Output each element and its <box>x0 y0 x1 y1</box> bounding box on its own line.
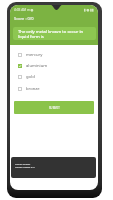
staticText: 4:03 AM ✉ ● <box>14 8 34 12</box>
staticText: ▮ ● ▮▮ <box>84 8 94 12</box>
staticText: Wrong Answer <box>15 163 31 166</box>
button[interactable]: mercury <box>10 49 98 60</box>
button[interactable]: aluminium <box>10 60 98 71</box>
staticText: aluminium <box>26 63 48 69</box>
button[interactable]: SUBMIT <box>14 101 94 114</box>
staticText: mercury <box>26 52 43 58</box>
staticText: gold <box>26 74 35 80</box>
button[interactable]: gold <box>10 71 98 82</box>
staticText: Score : 0/0 <box>14 16 34 21</box>
staticText: SUBMIT <box>49 106 60 110</box>
staticText: correct Answer is a <box>15 166 35 169</box>
button[interactable]: bronze <box>10 83 98 94</box>
staticText: bronze <box>26 86 40 92</box>
staticText: The only metal known to occur in liquid … <box>18 29 85 39</box>
